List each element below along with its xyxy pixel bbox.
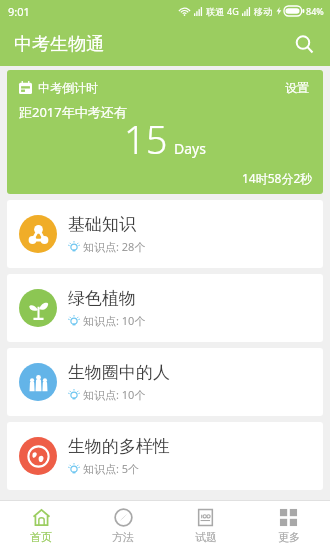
staticText: 中考倒计时	[38, 80, 98, 95]
staticText: 15	[124, 113, 168, 165]
staticText: 方法	[112, 530, 134, 544]
staticText: 联通	[206, 6, 224, 17]
staticText: 知识点: 10个	[83, 387, 146, 402]
staticText: 生物的多样性	[68, 436, 170, 457]
staticText: 14时58分2秒	[242, 170, 313, 186]
staticText: 知识点: 10个	[83, 313, 146, 328]
button[interactable]: 绿色植物	[7, 274, 323, 342]
staticText: Days	[174, 139, 206, 158]
button[interactable]: Search	[286, 26, 322, 62]
staticText: 生物圈中的人	[68, 362, 170, 383]
staticText: 试题	[195, 530, 217, 544]
staticText: 设置	[285, 80, 309, 95]
button[interactable]: 方法	[82, 501, 164, 550]
staticText: 9:01	[8, 4, 30, 19]
staticText: 基础知识	[68, 214, 136, 235]
staticText: 84%	[306, 5, 324, 17]
button[interactable]: 中考倒计时	[7, 70, 323, 194]
button[interactable]: 试题	[164, 501, 247, 550]
button[interactable]: 首页	[0, 501, 82, 550]
button[interactable]: 基础知识	[7, 200, 323, 268]
staticText: 距2017年中考还有	[19, 103, 127, 121]
staticText: 知识点: 5个	[83, 461, 140, 476]
staticText: 绿色植物	[68, 288, 136, 309]
staticText: 中考生物通	[14, 33, 104, 56]
button[interactable]: 生物圈中的人	[7, 348, 323, 416]
staticText: 知识点: 28个	[83, 239, 146, 254]
staticText: 更多	[278, 530, 300, 544]
button[interactable]: 生物的多样性	[7, 422, 323, 490]
staticText: 4G	[227, 5, 239, 17]
button[interactable]: 更多	[247, 501, 330, 550]
staticText: 首页	[30, 530, 52, 544]
button[interactable]: 设置	[281, 76, 313, 99]
staticText: 移动	[254, 6, 272, 17]
